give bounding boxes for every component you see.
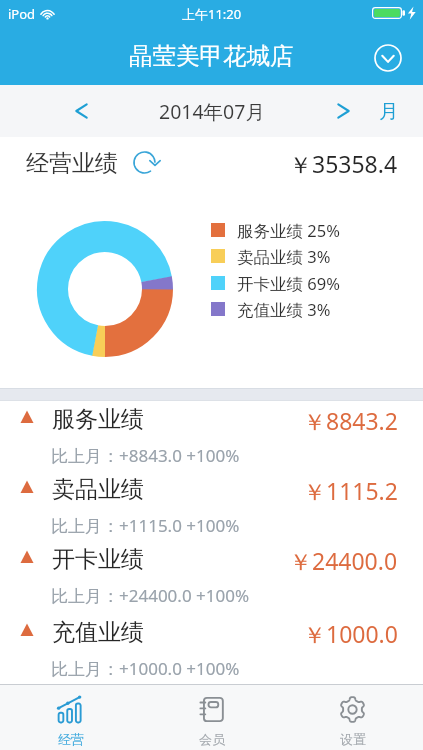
button[interactable]: 卖品业绩	[0, 471, 423, 541]
staticText: 卖品业绩	[52, 475, 144, 504]
staticText: 服务业绩 25%	[237, 219, 340, 242]
staticText: ￥24400.0	[289, 545, 398, 576]
staticText: ￥1115.2	[303, 475, 398, 506]
staticText: ￥1000.0	[303, 618, 398, 649]
button[interactable]: 服务业绩	[0, 401, 423, 471]
staticText: 设置	[340, 731, 366, 747]
staticText: 比上月：+24400.0 +100%	[51, 584, 250, 607]
button[interactable]: Previous month	[56, 85, 106, 137]
staticText: 开卡业绩	[52, 545, 144, 574]
staticText: 晶莹美甲花城店	[129, 41, 294, 71]
button[interactable]: Next month	[318, 85, 368, 137]
staticText: 充值业绩 3%	[237, 298, 331, 321]
button[interactable]: 设置	[282, 685, 423, 750]
staticText: 卖品业绩 3%	[237, 245, 331, 268]
button[interactable]: Refresh	[131, 149, 157, 175]
staticText: 经营	[58, 731, 84, 747]
staticText: 会员	[199, 731, 225, 747]
button[interactable]: 会员	[141, 685, 282, 750]
button[interactable]: 月	[371, 85, 407, 137]
staticText: ￥35358.4	[289, 148, 398, 179]
staticText: 充值业绩	[52, 618, 144, 647]
button[interactable]: Expand store list	[372, 42, 404, 74]
staticText: 比上月：+1000.0 +100%	[51, 657, 240, 680]
staticText: 经营业绩	[26, 149, 118, 178]
button[interactable]: 经营业绩	[0, 137, 423, 187]
staticText: 比上月：+8843.0 +100%	[51, 444, 240, 467]
button[interactable]: 充值业绩	[0, 614, 423, 684]
staticText: 月	[379, 99, 399, 124]
staticText: 上午11:20	[182, 5, 242, 23]
staticText: 服务业绩	[52, 405, 144, 434]
button[interactable]: 经营	[0, 685, 141, 750]
staticText: iPod	[8, 5, 36, 23]
staticText: 2014年07月	[159, 98, 265, 125]
button[interactable]: 开卡业绩	[0, 541, 423, 611]
staticText: 比上月：+1115.0 +100%	[51, 514, 240, 537]
staticText: ￥8843.2	[303, 405, 398, 436]
staticText: 开卡业绩 69%	[237, 272, 340, 295]
